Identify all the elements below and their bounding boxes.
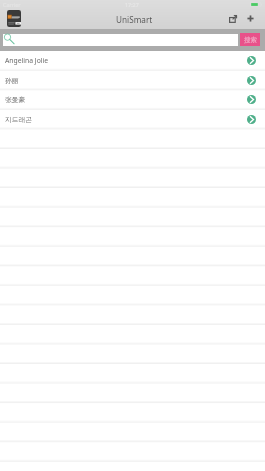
button[interactable]: 搜索 — [240, 33, 260, 46]
button[interactable]: Search — [3, 33, 15, 45]
staticText: 17:27 — [125, 1, 139, 8]
button[interactable]: Share — [229, 15, 237, 23]
staticText: 지드래곤 — [5, 115, 33, 124]
button[interactable]: App thumbnail — [7, 10, 21, 27]
staticText: 张曼豪 — [5, 95, 26, 104]
staticText: 孙丽 — [5, 76, 19, 85]
button[interactable]: Angelina Jolie — [0, 50, 265, 70]
staticText: Angelina Jolie — [5, 56, 49, 65]
button[interactable]: 孙丽 — [0, 70, 265, 90]
button[interactable]: Search field — [3, 34, 238, 46]
button[interactable]: Add — [246, 14, 255, 23]
staticText: UniSmart — [116, 14, 153, 25]
button[interactable]: 张曼豪 — [0, 89, 265, 109]
button[interactable]: 지드래곤 — [0, 109, 265, 129]
staticText: 搜索 — [244, 36, 257, 44]
